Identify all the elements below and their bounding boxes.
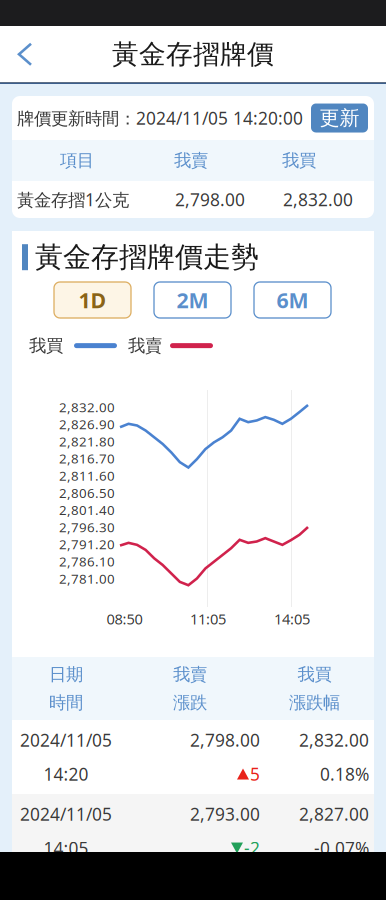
- staticText: 2M: [176, 286, 208, 314]
- staticText: 1D: [78, 286, 106, 314]
- button[interactable]: 2M: [154, 282, 231, 318]
- button[interactable]: 6M: [254, 282, 331, 318]
- staticText: 2,798.00: [190, 728, 260, 751]
- staticText: 2,832.00: [59, 398, 115, 416]
- staticText: 項目: [60, 150, 94, 171]
- staticText: 黃金存摺牌價: [112, 38, 274, 71]
- staticText: 08:50: [106, 609, 142, 628]
- staticText: 2,796.30: [59, 518, 115, 536]
- staticText: 2,798.00: [175, 188, 245, 211]
- staticText: 2024/11/05: [20, 802, 112, 825]
- staticText: 14:05: [43, 836, 88, 859]
- staticText: 2024/11/05: [20, 728, 112, 751]
- staticText: 我買: [297, 664, 331, 685]
- staticText: 2,827.00: [299, 802, 369, 825]
- staticText: 2,791.20: [59, 535, 115, 553]
- staticText: 11:05: [190, 609, 226, 628]
- staticText: 我賣: [174, 150, 208, 171]
- staticText: 2,821.80: [59, 432, 115, 450]
- button[interactable]: 更新: [311, 103, 368, 132]
- staticText: 日期: [49, 664, 83, 685]
- staticText: 黃金存摺1公克: [17, 188, 129, 211]
- staticText: 2,806.50: [59, 484, 115, 502]
- staticText: 我賣: [173, 664, 207, 685]
- staticText: 我買: [29, 335, 63, 356]
- staticText: 2,801.40: [59, 501, 115, 519]
- staticText: 我買: [282, 150, 316, 171]
- staticText: 更新: [319, 106, 359, 130]
- staticText: 漲跌: [173, 692, 207, 713]
- staticText: 黃金存摺牌價走勢: [35, 240, 259, 274]
- staticText: 2,781.00: [59, 570, 115, 587]
- staticText: 時間: [49, 692, 83, 713]
- staticText: 0.18%: [320, 762, 369, 785]
- staticText: 14:20: [43, 762, 88, 785]
- staticText: 牌價更新時間：2024/11/05 14:20:00: [17, 106, 303, 129]
- staticText: 2,811.60: [59, 467, 115, 484]
- staticText: 2,832.00: [299, 728, 369, 751]
- staticText: 2,826.90: [59, 415, 115, 433]
- staticText: -2: [244, 836, 260, 859]
- staticText: 我賣: [128, 335, 162, 356]
- staticText: 14:05: [274, 609, 310, 628]
- staticText: -0.07%: [314, 836, 369, 859]
- staticText: 5: [250, 762, 260, 785]
- button[interactable]: Back: [0, 28, 47, 81]
- staticText: 2,816.70: [59, 450, 115, 467]
- staticText: 2,832.00: [283, 188, 353, 211]
- staticText: 2,793.00: [190, 802, 260, 825]
- staticText: 6M: [276, 286, 308, 314]
- staticText: 2,786.10: [59, 552, 115, 570]
- staticText: 漲跌幅: [289, 692, 340, 713]
- button[interactable]: 1D: [54, 282, 131, 318]
